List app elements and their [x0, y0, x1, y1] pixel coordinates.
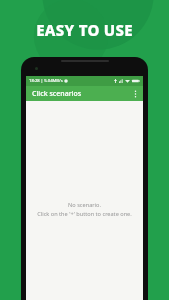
- staticText: EASY TO USE: [36, 20, 133, 40]
- staticText: No scenario.: [68, 201, 101, 209]
- staticText: Click on the '+' button to create one.: [37, 210, 132, 218]
- staticText: Click scenarios: [32, 89, 82, 99]
- staticText: 18:28 | 5.04MB/s: [29, 78, 63, 84]
- button[interactable]: More options: [128, 86, 143, 101]
